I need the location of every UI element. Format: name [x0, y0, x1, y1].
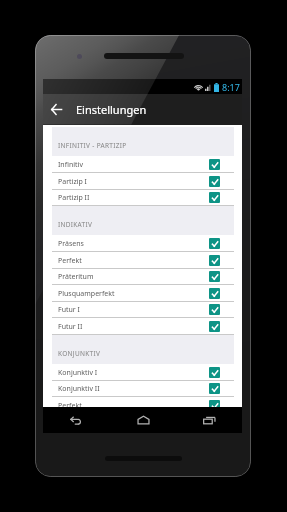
staticText: INDIKATIV [58, 220, 93, 229]
staticText: Plusquamperfekt [58, 289, 209, 299]
button[interactable]: Infinitiv [52, 156, 234, 173]
button[interactable]: Futur I [52, 301, 234, 318]
button[interactable]: Plusquamperfekt [52, 285, 234, 302]
button[interactable]: Partizip I [52, 173, 234, 190]
button[interactable]: Konjunktiv II [52, 380, 234, 397]
button[interactable]: Home [110, 407, 176, 433]
button[interactable]: Präteritum [52, 268, 234, 285]
staticText: Präteritum [58, 272, 209, 282]
staticText: Perfekt [58, 256, 209, 266]
staticText: Einstellungen [76, 102, 147, 117]
staticText: KONJUNKTIV [58, 349, 101, 358]
button[interactable]: Perfekt [52, 252, 234, 269]
staticText: Infinitiv [58, 160, 209, 170]
button[interactable]: Perfekt [52, 397, 234, 414]
staticText: Partizip I [58, 177, 209, 187]
staticText: Perfekt [58, 401, 209, 411]
button[interactable]: Back [43, 407, 110, 433]
staticText: 8:17 [222, 81, 240, 93]
button[interactable]: Partizip II [52, 189, 234, 206]
staticText: Präsens [58, 239, 209, 249]
staticText: Konjunktiv II [58, 384, 209, 394]
staticText: Futur I [58, 305, 209, 315]
staticText: Futur II [58, 322, 209, 332]
button[interactable]: Präsens [52, 235, 234, 252]
button[interactable]: Konjunktiv I [52, 364, 234, 381]
button[interactable]: Plusquamperfekt [52, 414, 234, 431]
staticText: Plusquamperfekt [58, 418, 209, 428]
button[interactable]: Recent apps [176, 407, 242, 433]
staticText: INFINITIV - PARTIZIP [58, 141, 127, 150]
button[interactable]: Navigate up [43, 94, 69, 125]
staticText: Partizip II [58, 193, 209, 203]
button[interactable]: Futur II [52, 318, 234, 335]
staticText: Konjunktiv I [58, 368, 209, 378]
